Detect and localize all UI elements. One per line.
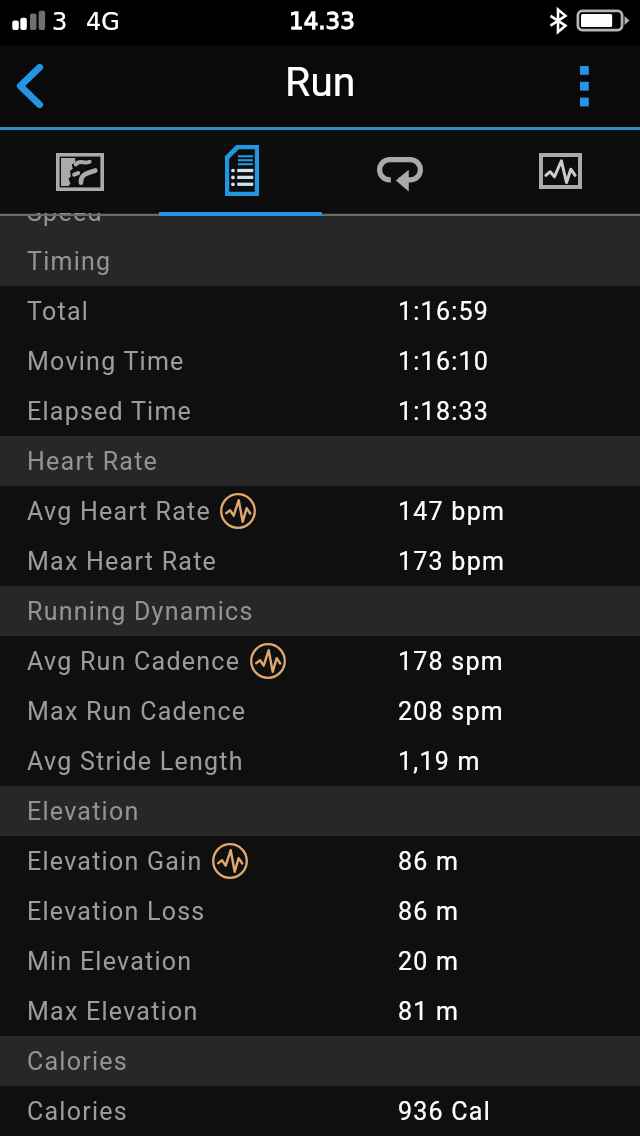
button[interactable]: Max Elevation: [0, 986, 640, 1036]
staticText: 936 Cal: [398, 1097, 492, 1126]
button[interactable]: Details: [160, 130, 320, 213]
staticText: Calories: [27, 1047, 128, 1076]
staticText: Avg Stride Length: [27, 747, 244, 776]
button[interactable]: Total: [0, 286, 640, 336]
button[interactable]: Elapsed Time: [0, 386, 640, 436]
button[interactable]: Max Run Cadence: [0, 686, 640, 736]
staticText: Elevation: [27, 797, 140, 826]
staticText: 1:16:59: [398, 297, 490, 326]
button[interactable]: Map: [0, 130, 160, 213]
button[interactable]: Elevation Gain: [0, 836, 640, 886]
staticText: 178 spm: [398, 647, 504, 676]
staticText: Min Elevation: [27, 947, 193, 976]
button[interactable]: Moving Time: [0, 336, 640, 386]
button[interactable]: Avg Stride Length: [0, 736, 640, 786]
button[interactable]: Laps: [320, 130, 480, 213]
button[interactable]: Avg Run Cadence: [0, 636, 640, 686]
staticText: Elevation Loss: [27, 897, 206, 926]
button[interactable]: Elevation Loss: [0, 886, 640, 936]
staticText: 1:16:10: [398, 347, 490, 376]
staticText: Timing: [27, 247, 112, 276]
staticText: Run: [285, 58, 356, 106]
staticText: 20 m: [398, 947, 460, 976]
staticText: Calories: [27, 1097, 128, 1126]
staticText: Elapsed Time: [27, 397, 193, 426]
staticText: Avg Run Cadence: [27, 647, 241, 676]
staticText: Avg Heart Rate: [27, 497, 211, 526]
staticText: Moving Time: [27, 347, 185, 376]
staticText: Max Heart Rate: [27, 547, 218, 576]
staticText: 86 m: [398, 897, 460, 926]
staticText: Max Run Cadence: [27, 697, 247, 726]
staticText: Heart Rate: [27, 447, 159, 476]
staticText: 4G: [86, 8, 120, 36]
staticText: 173 bpm: [398, 547, 506, 576]
button[interactable]: Avg Heart Rate: [0, 486, 640, 536]
staticText: 86 m: [398, 847, 460, 876]
staticText: Elevation Gain: [27, 847, 203, 876]
staticText: 14.33: [289, 8, 355, 35]
button[interactable]: Min Elevation: [0, 936, 640, 986]
staticText: 1,19 m: [398, 747, 481, 776]
staticText: Max Elevation: [27, 997, 199, 1026]
button[interactable]: Calories: [0, 1086, 640, 1136]
staticText: 147 bpm: [398, 497, 506, 526]
staticText: 1:18:33: [398, 397, 490, 426]
staticText: 3: [52, 8, 68, 36]
button[interactable]: Charts: [480, 130, 640, 213]
staticText: 208 spm: [398, 697, 504, 726]
button[interactable]: Max Heart Rate: [0, 536, 640, 586]
staticText: Speed: [27, 213, 103, 227]
staticText: Running Dynamics: [27, 597, 254, 626]
staticText: Total: [27, 297, 90, 326]
staticText: 81 m: [398, 997, 460, 1026]
button[interactable]: Back: [0, 45, 62, 127]
button[interactable]: More options: [528, 45, 640, 127]
